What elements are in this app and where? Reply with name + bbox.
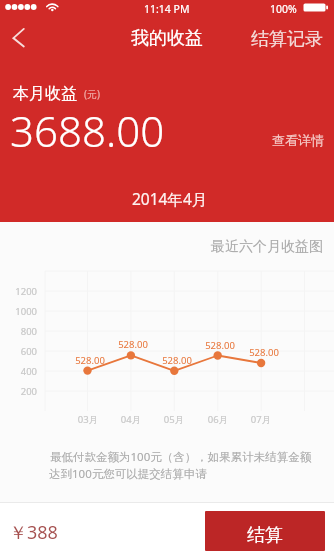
staticText: 800 [7,325,37,338]
staticText: 最低付款金额为100元（含），如果累计未结算金额 [50,449,312,465]
button[interactable]: 查看详情 [268,128,328,152]
staticText: 600 [7,345,37,358]
staticText: 06月 [198,413,238,426]
staticText: (元) [84,87,100,101]
staticText: 1200 [7,285,37,298]
staticText: 2014年4月 [132,188,208,209]
staticText: 3688.00 [10,102,165,159]
staticText: 1000 [7,305,37,318]
staticText: 400 [7,365,37,378]
staticText: 528.00 [71,354,109,367]
staticText: 05月 [154,413,194,426]
staticText: 本月收益 [13,84,77,104]
staticText: 查看详情 [272,132,324,148]
staticText: 11:14 PM [144,2,190,16]
button[interactable]: 结算 [205,511,325,551]
staticText: 200 [7,385,37,398]
staticText: 528.00 [158,354,196,367]
staticText: ￥388 [9,520,58,545]
button[interactable]: 结算记录 [240,19,334,57]
staticText: 100% [270,2,297,16]
staticText: 04月 [111,413,151,426]
staticText: 结算记录 [251,28,323,48]
staticText: 528.00 [245,346,283,359]
button[interactable]: Back [0,19,40,57]
staticText: 达到100元您可以提交结算申请 [49,466,207,482]
staticText: 最近六个月收益图 [211,238,323,256]
staticText: 528.00 [114,338,152,351]
staticText: 03月 [68,413,108,426]
staticText: 07月 [241,413,281,426]
staticText: 结算 [247,524,283,547]
staticText: 我的收益 [131,27,203,50]
staticText: 528.00 [201,339,239,352]
